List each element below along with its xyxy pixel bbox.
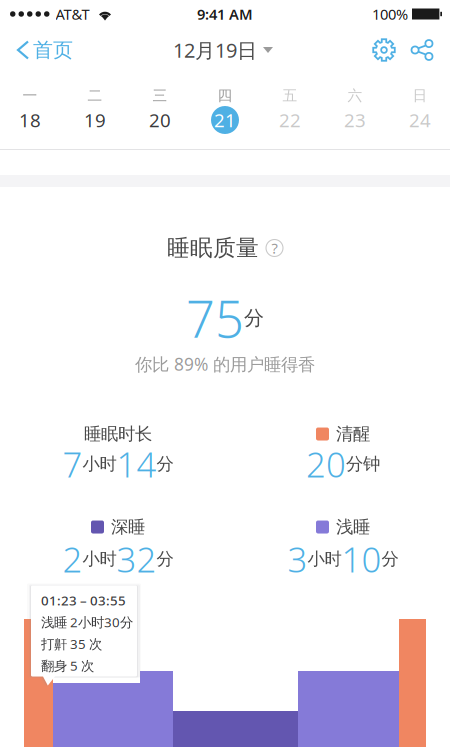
staticText: 小时 bbox=[307, 548, 341, 570]
button[interactable]: 二 bbox=[62, 74, 127, 146]
button[interactable]: 设置 bbox=[365, 28, 403, 72]
button[interactable]: 五 bbox=[257, 74, 322, 146]
staticText: 9:41 AM bbox=[197, 4, 253, 24]
staticText: 7 bbox=[62, 441, 82, 487]
staticText: 10 bbox=[341, 536, 381, 582]
staticText: 一 bbox=[22, 86, 37, 104]
staticText: 14 bbox=[116, 441, 156, 487]
button[interactable]: 首页 bbox=[0, 28, 81, 72]
staticText: 首页 bbox=[33, 38, 73, 62]
staticText: 12月19日 bbox=[173, 37, 257, 63]
staticText: 分 bbox=[381, 548, 398, 570]
staticText: 浅睡 bbox=[336, 516, 370, 538]
staticText: 你比 89% 的用户睡得香 bbox=[135, 352, 315, 375]
staticText: 分钟 bbox=[346, 453, 380, 475]
staticText: 小时 bbox=[82, 548, 116, 570]
button[interactable]: 一 bbox=[0, 74, 62, 146]
staticText: 六 bbox=[347, 86, 362, 104]
staticText: 3 bbox=[287, 536, 307, 582]
staticText: 小时 bbox=[82, 453, 116, 475]
staticText: 日 bbox=[412, 86, 427, 104]
staticText: 浅睡 2小时30分 bbox=[41, 613, 133, 631]
button[interactable]: 日 bbox=[387, 74, 450, 146]
staticText: 100% bbox=[372, 4, 408, 24]
staticText: 翻身 5 次 bbox=[41, 657, 94, 674]
staticText: 分 bbox=[244, 306, 264, 330]
button[interactable]: 六 bbox=[322, 74, 387, 146]
staticText: 四 bbox=[217, 86, 232, 104]
staticText: 二 bbox=[87, 86, 102, 104]
button[interactable]: 三 bbox=[127, 74, 192, 146]
staticText: 21 bbox=[214, 108, 236, 132]
staticText: 24 bbox=[409, 108, 431, 132]
staticText: 清醒 bbox=[336, 423, 370, 445]
button[interactable]: 分享 bbox=[403, 28, 441, 72]
staticText: 20 bbox=[149, 108, 171, 132]
staticText: 18 bbox=[19, 108, 41, 132]
button[interactable]: 12月19日 bbox=[173, 28, 273, 72]
staticText: 睡眠时长 bbox=[84, 423, 152, 445]
button[interactable]: 四 bbox=[192, 74, 257, 146]
staticText: 睡眠质量 bbox=[167, 234, 259, 262]
staticText: 2 bbox=[62, 536, 82, 582]
staticText: ? bbox=[271, 238, 277, 258]
staticText: 19 bbox=[84, 108, 106, 132]
staticText: 23 bbox=[344, 108, 366, 132]
staticText: 22 bbox=[279, 108, 301, 132]
staticText: 分 bbox=[156, 453, 173, 475]
staticText: 五 bbox=[282, 86, 297, 104]
staticText: 01:23 – 03:55 bbox=[41, 591, 126, 609]
staticText: AT&T bbox=[55, 4, 89, 24]
staticText: 分 bbox=[156, 548, 173, 570]
staticText: 深睡 bbox=[111, 516, 145, 538]
staticText: 三 bbox=[152, 86, 167, 104]
staticText: 打鼾 35 次 bbox=[41, 635, 102, 653]
staticText: 75 bbox=[186, 284, 244, 352]
staticText: 20 bbox=[306, 441, 346, 487]
staticText: 32 bbox=[116, 536, 156, 582]
